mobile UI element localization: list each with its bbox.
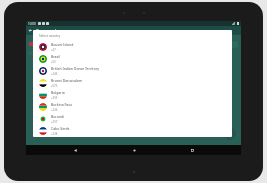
- staticText: Cabo Verde: [51, 126, 70, 131]
- staticText: Brazil: [51, 54, 60, 59]
- button[interactable]: Bulgaria: [33, 89, 232, 101]
- staticText: +55: [51, 60, 56, 64]
- button[interactable]: Cabo Verde: [33, 125, 232, 137]
- staticText: Burundi: [51, 114, 65, 119]
- staticText: British Indian Ocean Territory: [51, 66, 99, 71]
- button[interactable]: Navigate up: [28, 28, 33, 33]
- button[interactable]: Confirm: [223, 127, 236, 140]
- button[interactable]: [29, 42, 36, 46]
- staticText: +673: [51, 84, 58, 88]
- button[interactable]: [226, 41, 238, 48]
- button[interactable]: Bouvet Island: [33, 41, 232, 53]
- button[interactable]: Burkina Faso: [33, 101, 232, 113]
- staticText: Phone number: [36, 28, 61, 33]
- staticText: +359: [51, 96, 58, 100]
- button[interactable]: Brazil: [33, 53, 232, 65]
- staticText: +226: [51, 108, 58, 112]
- staticText: Bulgaria: [51, 90, 65, 95]
- button[interactable]: Burundi: [33, 113, 232, 125]
- staticText: Bouvet Island: [51, 42, 74, 47]
- staticText: +246: [51, 72, 58, 76]
- staticText: Select country: [39, 34, 61, 38]
- button[interactable]: Recents: [182, 145, 202, 155]
- staticText: Brunei Darussalam: [51, 78, 82, 83]
- staticText: +238: [51, 132, 58, 136]
- button[interactable]: Home: [124, 145, 144, 155]
- staticText: +257: [51, 120, 58, 124]
- staticText: +47: [51, 48, 56, 52]
- staticText: 10:00: [28, 22, 36, 26]
- staticText: Burkina Faso: [51, 102, 72, 107]
- button[interactable]: Back: [65, 145, 85, 155]
- button[interactable]: Brunei Darussalam: [33, 77, 232, 89]
- button[interactable]: British Indian Ocean Territory: [33, 65, 232, 77]
- button[interactable]: Navigate up: [26, 26, 241, 35]
